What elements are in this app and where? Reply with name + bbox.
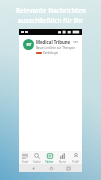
staticText: vor 3 Std. [71, 40, 78, 44]
staticText: Fächer [45, 160, 54, 164]
staticText: Medical Tribune [36, 39, 71, 45]
staticText: Feed [22, 160, 28, 164]
staticText: ausschließlich für Ihr Fachgebiet [3, 16, 98, 25]
staticText: Relevante Nachrichten [16, 6, 86, 15]
staticText: Kurse [59, 160, 66, 164]
button[interactable]: Profil [69, 151, 82, 164]
button[interactable]: Recents [64, 164, 72, 172]
staticText: MT [26, 42, 32, 47]
staticText: Suche [33, 160, 41, 164]
button[interactable]: Back [29, 164, 37, 172]
button[interactable]: Fächer [43, 151, 56, 164]
button[interactable]: Suche [31, 151, 43, 164]
button[interactable]: Home [47, 164, 55, 172]
button[interactable]: Kurse [56, 151, 69, 164]
button[interactable]: MT [21, 37, 80, 57]
staticText: Profil [72, 160, 79, 164]
staticText: Kardiologie [43, 51, 58, 55]
staticText: Neue Leitlinie zur Therapie [36, 46, 75, 50]
button[interactable]: Feed [19, 151, 31, 164]
